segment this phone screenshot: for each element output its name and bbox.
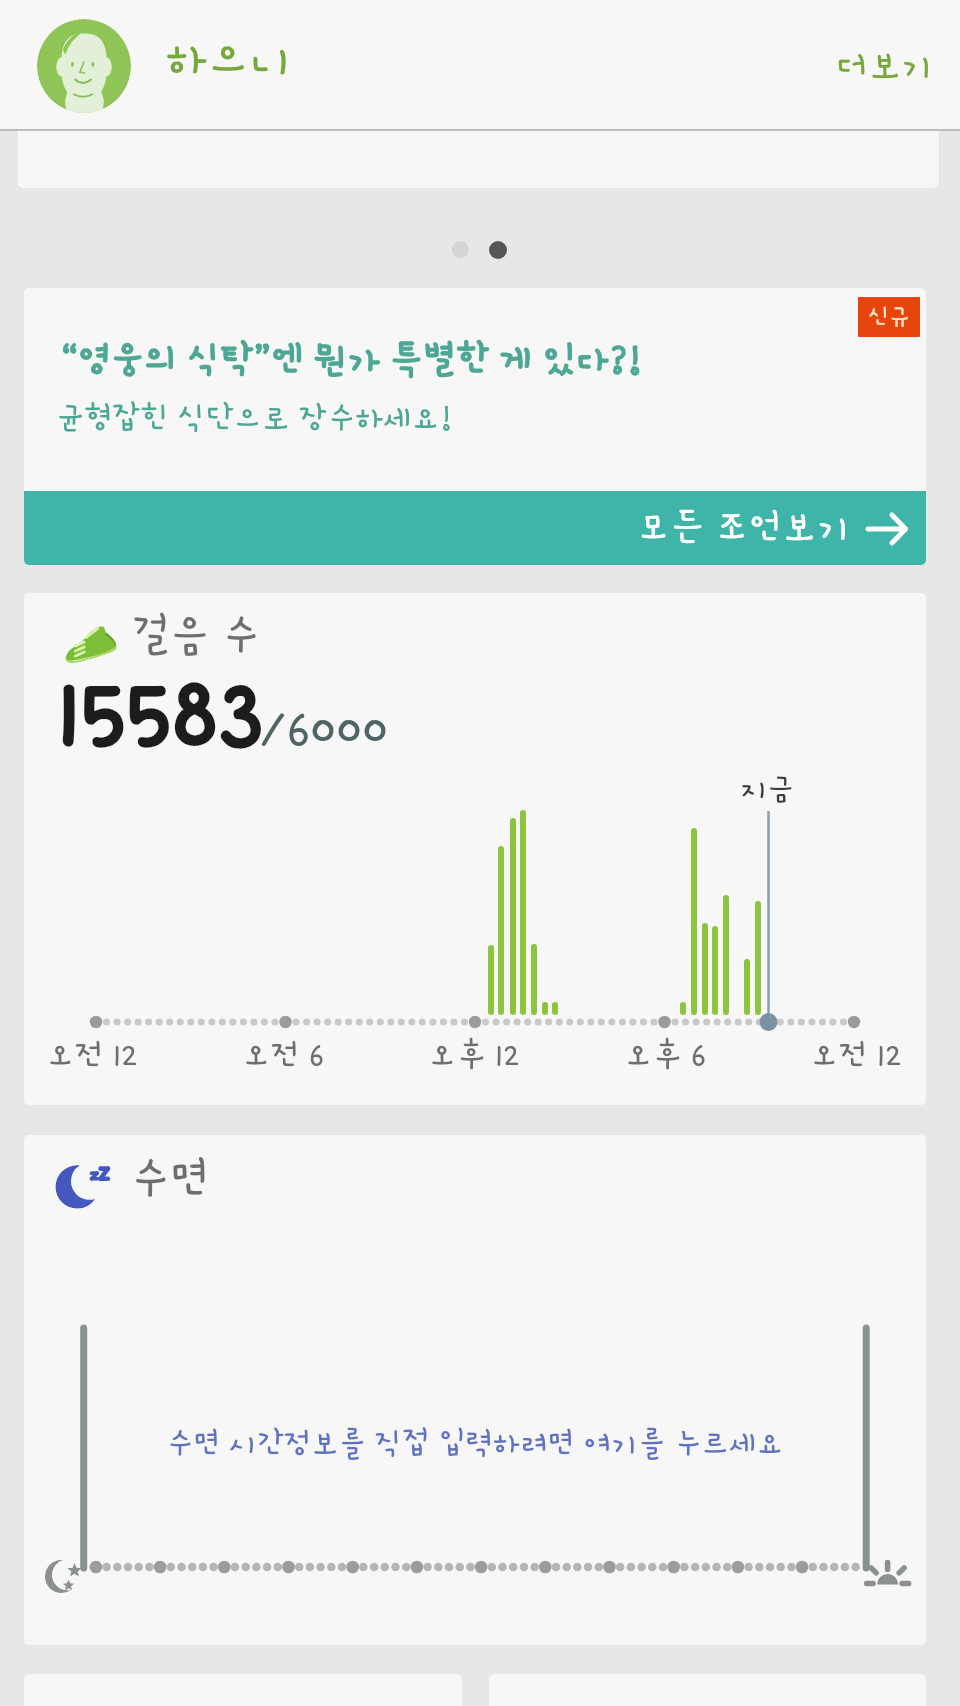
button[interactable]: 모든 조언보기 xyxy=(24,491,926,565)
staticText: 오후 6 xyxy=(624,1037,707,1073)
staticText: 더보기 xyxy=(837,46,934,86)
staticText: 신규 xyxy=(868,304,910,330)
staticText: 오전 12 xyxy=(810,1037,902,1073)
staticText: 15583 xyxy=(57,659,264,765)
button[interactable]: 더보기 xyxy=(811,26,960,106)
staticText: 수면 시간정보를 직접 입력하려면 여기를 누르세요 xyxy=(24,1426,926,1460)
button[interactable]: Profile xyxy=(37,19,131,113)
staticText: 지금 xyxy=(741,772,795,805)
button[interactable]: 걸음 수 xyxy=(24,593,926,1105)
staticText: 오전 6 xyxy=(242,1037,325,1073)
button[interactable]: 수면 xyxy=(24,1135,926,1645)
staticText: 수면 xyxy=(130,1154,211,1204)
staticText: /6000 xyxy=(260,701,389,757)
button[interactable]: 신규 xyxy=(24,288,926,565)
staticText: 오후 12 xyxy=(428,1037,520,1073)
staticText: 걸음 수 xyxy=(132,611,261,659)
staticText: “영웅의 식탁”엔 뭔가 특별한 게 있다?! xyxy=(61,339,642,380)
staticText: 하으니 xyxy=(166,33,292,85)
staticText: 오전 12 xyxy=(46,1037,138,1073)
staticText: 균형잡힌 식단으로 장수하세요! xyxy=(56,401,452,436)
staticText: 모든 조언보기 xyxy=(637,506,851,548)
